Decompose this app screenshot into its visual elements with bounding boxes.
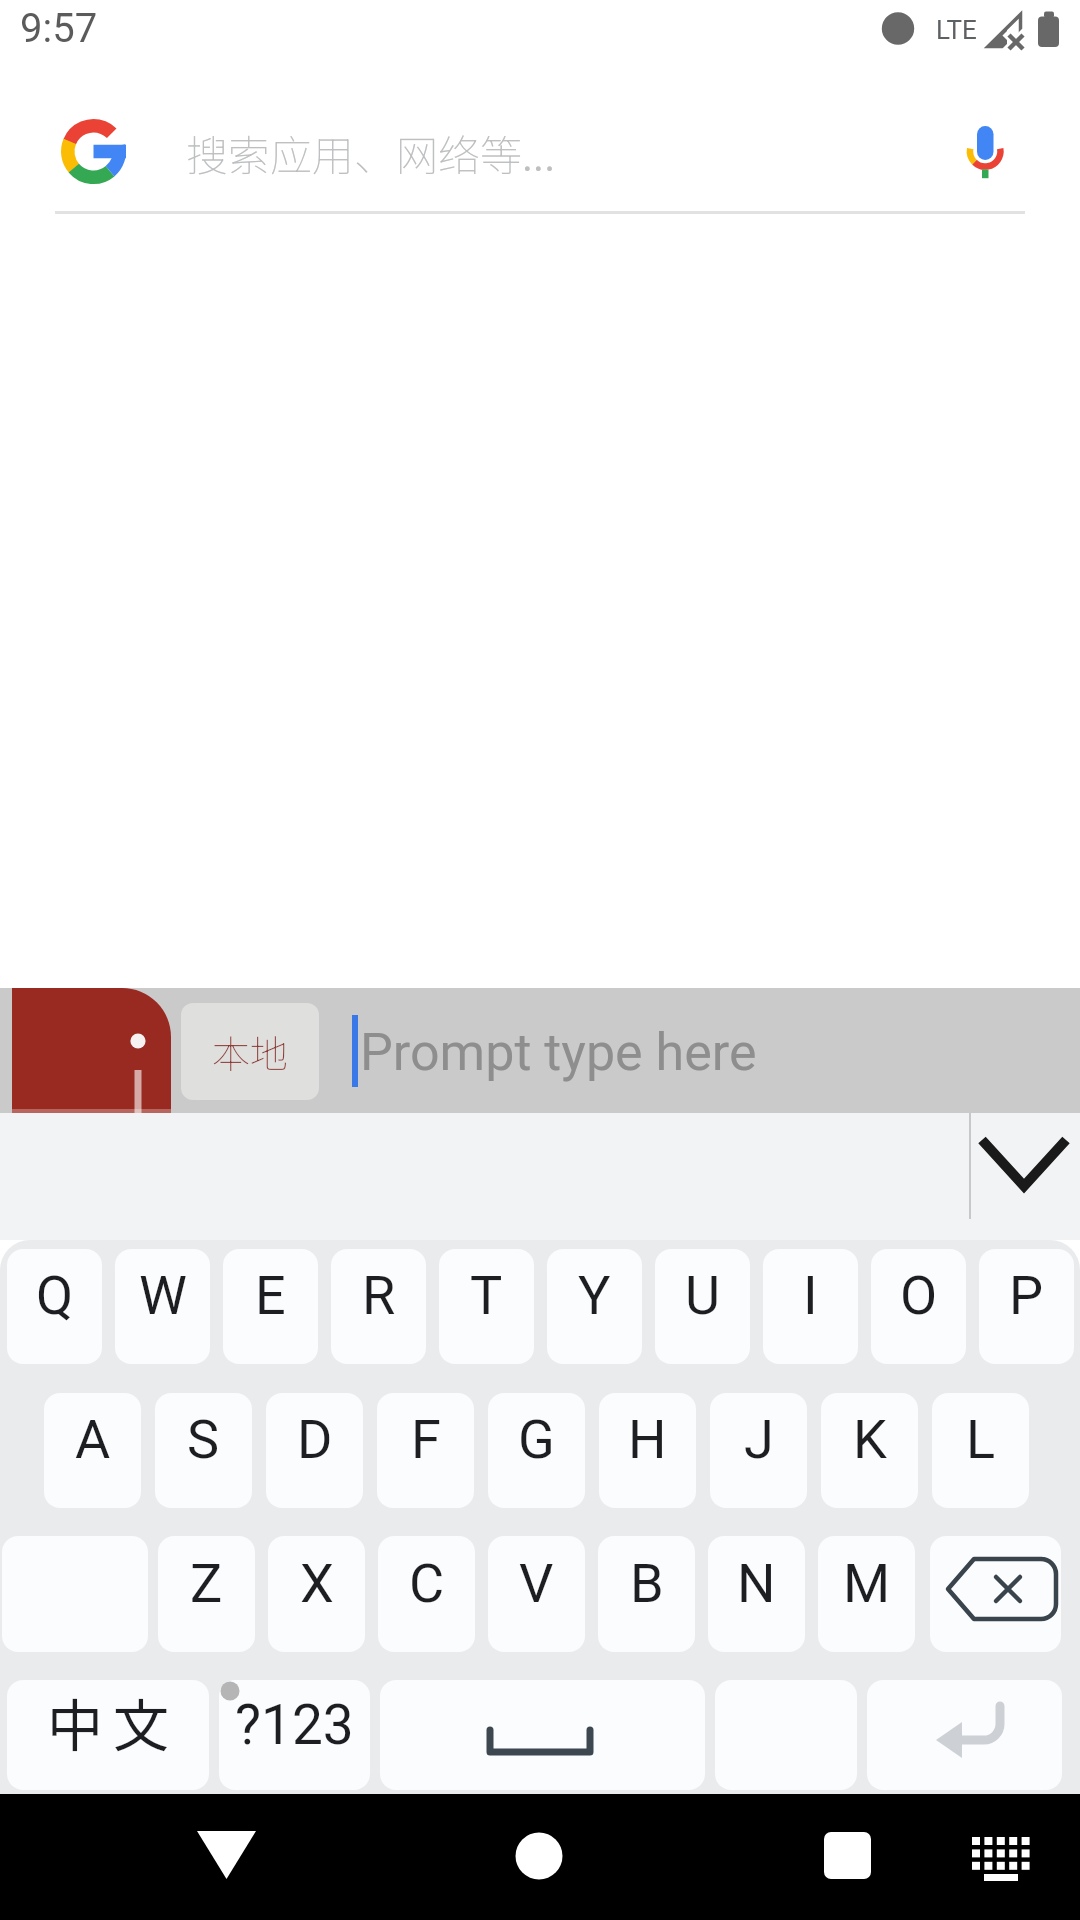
button[interactable] bbox=[380, 1680, 705, 1790]
staticText: K bbox=[853, 1408, 887, 1471]
button[interactable]: R bbox=[331, 1249, 426, 1364]
staticText: W bbox=[139, 1264, 187, 1327]
button[interactable]: P bbox=[979, 1249, 1074, 1364]
button[interactable]: F bbox=[377, 1393, 474, 1508]
button[interactable]: M bbox=[818, 1536, 915, 1652]
staticText: A bbox=[75, 1408, 111, 1471]
staticText: X bbox=[300, 1552, 334, 1615]
button[interactable]: Y bbox=[547, 1249, 642, 1364]
staticText: J bbox=[744, 1408, 774, 1471]
staticText: 本地 bbox=[212, 1024, 289, 1079]
staticText: Prompt type here bbox=[360, 1022, 757, 1083]
button[interactable]: C bbox=[378, 1536, 475, 1652]
button[interactable] bbox=[166, 1800, 286, 1914]
button[interactable]: K bbox=[821, 1393, 918, 1508]
staticText: N bbox=[737, 1552, 776, 1615]
button[interactable]: I bbox=[763, 1249, 858, 1364]
button[interactable]: ?123 bbox=[219, 1680, 370, 1790]
button[interactable]: N bbox=[708, 1536, 805, 1652]
button[interactable] bbox=[867, 1680, 1062, 1790]
staticText: B bbox=[630, 1552, 664, 1615]
button[interactable]: E bbox=[223, 1249, 318, 1364]
button[interactable]: O bbox=[871, 1249, 966, 1364]
button[interactable]: G bbox=[488, 1393, 585, 1508]
staticText: Y bbox=[578, 1264, 611, 1327]
button[interactable]: Q bbox=[7, 1249, 102, 1364]
button[interactable]: B bbox=[598, 1536, 695, 1652]
staticText: L bbox=[966, 1408, 996, 1471]
staticText: T bbox=[470, 1264, 503, 1327]
staticText: D bbox=[297, 1408, 333, 1471]
staticText: 9:57 bbox=[20, 5, 98, 52]
button[interactable]: 本地 bbox=[181, 1003, 319, 1100]
button[interactable]: J bbox=[710, 1393, 807, 1508]
staticText: Z bbox=[190, 1552, 223, 1615]
staticText: O bbox=[900, 1264, 938, 1327]
button[interactable] bbox=[955, 115, 1015, 185]
button[interactable]: T bbox=[439, 1249, 534, 1364]
button[interactable]: A bbox=[44, 1393, 141, 1508]
button[interactable] bbox=[28, 88, 1052, 216]
staticText: C bbox=[409, 1552, 445, 1615]
staticText: V bbox=[519, 1552, 554, 1615]
staticText: LTE bbox=[936, 15, 977, 45]
staticText: Q bbox=[36, 1264, 74, 1327]
button[interactable]: W bbox=[115, 1249, 210, 1364]
staticText: G bbox=[518, 1408, 555, 1471]
button[interactable]: U bbox=[655, 1249, 750, 1364]
staticText: 搜索应用、网络等... bbox=[186, 122, 556, 183]
staticText: H bbox=[628, 1408, 667, 1471]
staticText: P bbox=[1009, 1264, 1044, 1327]
staticText: ?123 bbox=[235, 1693, 354, 1757]
button[interactable] bbox=[955, 1810, 1055, 1904]
staticText: 中文 bbox=[42, 1681, 174, 1762]
button[interactable]: 中文 bbox=[7, 1680, 209, 1790]
staticText: R bbox=[362, 1264, 396, 1327]
button[interactable] bbox=[930, 1536, 1061, 1652]
button[interactable] bbox=[12, 988, 171, 1113]
staticText: M bbox=[843, 1552, 891, 1615]
button[interactable]: S bbox=[155, 1393, 252, 1508]
button[interactable]: H bbox=[599, 1393, 696, 1508]
staticText: F bbox=[411, 1408, 441, 1471]
staticText: U bbox=[685, 1264, 721, 1327]
staticText: S bbox=[187, 1408, 220, 1471]
button[interactable] bbox=[480, 1800, 600, 1914]
staticText: I bbox=[803, 1264, 818, 1327]
button[interactable]: L bbox=[932, 1393, 1029, 1508]
button[interactable]: Z bbox=[158, 1536, 255, 1652]
button[interactable]: D bbox=[266, 1393, 363, 1508]
button[interactable]: V bbox=[488, 1536, 585, 1652]
button[interactable]: X bbox=[268, 1536, 365, 1652]
button[interactable] bbox=[788, 1800, 908, 1914]
button[interactable] bbox=[960, 1113, 1080, 1240]
staticText: E bbox=[255, 1264, 286, 1327]
